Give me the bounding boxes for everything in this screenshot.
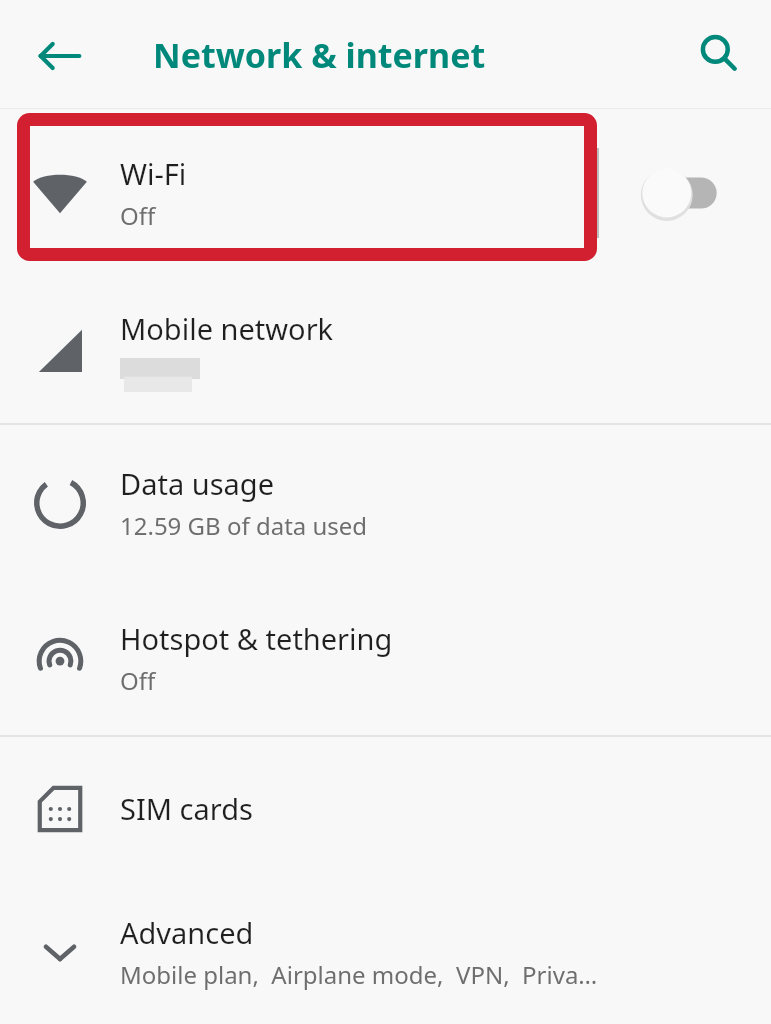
staticText: Advanced bbox=[120, 913, 254, 952]
button[interactable]: Wi-Fi toggle bbox=[599, 109, 771, 277]
button[interactable]: Search bbox=[677, 12, 761, 96]
button[interactable]: SIM cards bbox=[0, 737, 771, 880]
button[interactable]: Hotspot & tethering bbox=[0, 580, 771, 735]
staticText: Hotspot & tethering bbox=[120, 619, 393, 658]
staticText: SIM cards bbox=[120, 789, 253, 828]
button[interactable]: Mobile network bbox=[0, 277, 771, 423]
staticText: Mobile plan, Airplane mode, VPN, Priva… bbox=[120, 958, 598, 991]
staticText: Mobile network bbox=[120, 309, 334, 348]
button[interactable]: Wi-Fi bbox=[0, 109, 771, 277]
staticText: Off bbox=[120, 199, 156, 232]
button[interactable]: Data usage bbox=[0, 425, 771, 580]
staticText: Off bbox=[120, 664, 156, 697]
button[interactable]: Back bbox=[18, 14, 102, 98]
staticText: 12.59 GB of data used bbox=[120, 509, 368, 542]
staticText: Network & internet bbox=[153, 32, 486, 78]
button[interactable]: Advanced bbox=[0, 880, 771, 1024]
staticText: Data usage bbox=[120, 464, 274, 503]
staticText: Wi-Fi bbox=[120, 154, 187, 193]
